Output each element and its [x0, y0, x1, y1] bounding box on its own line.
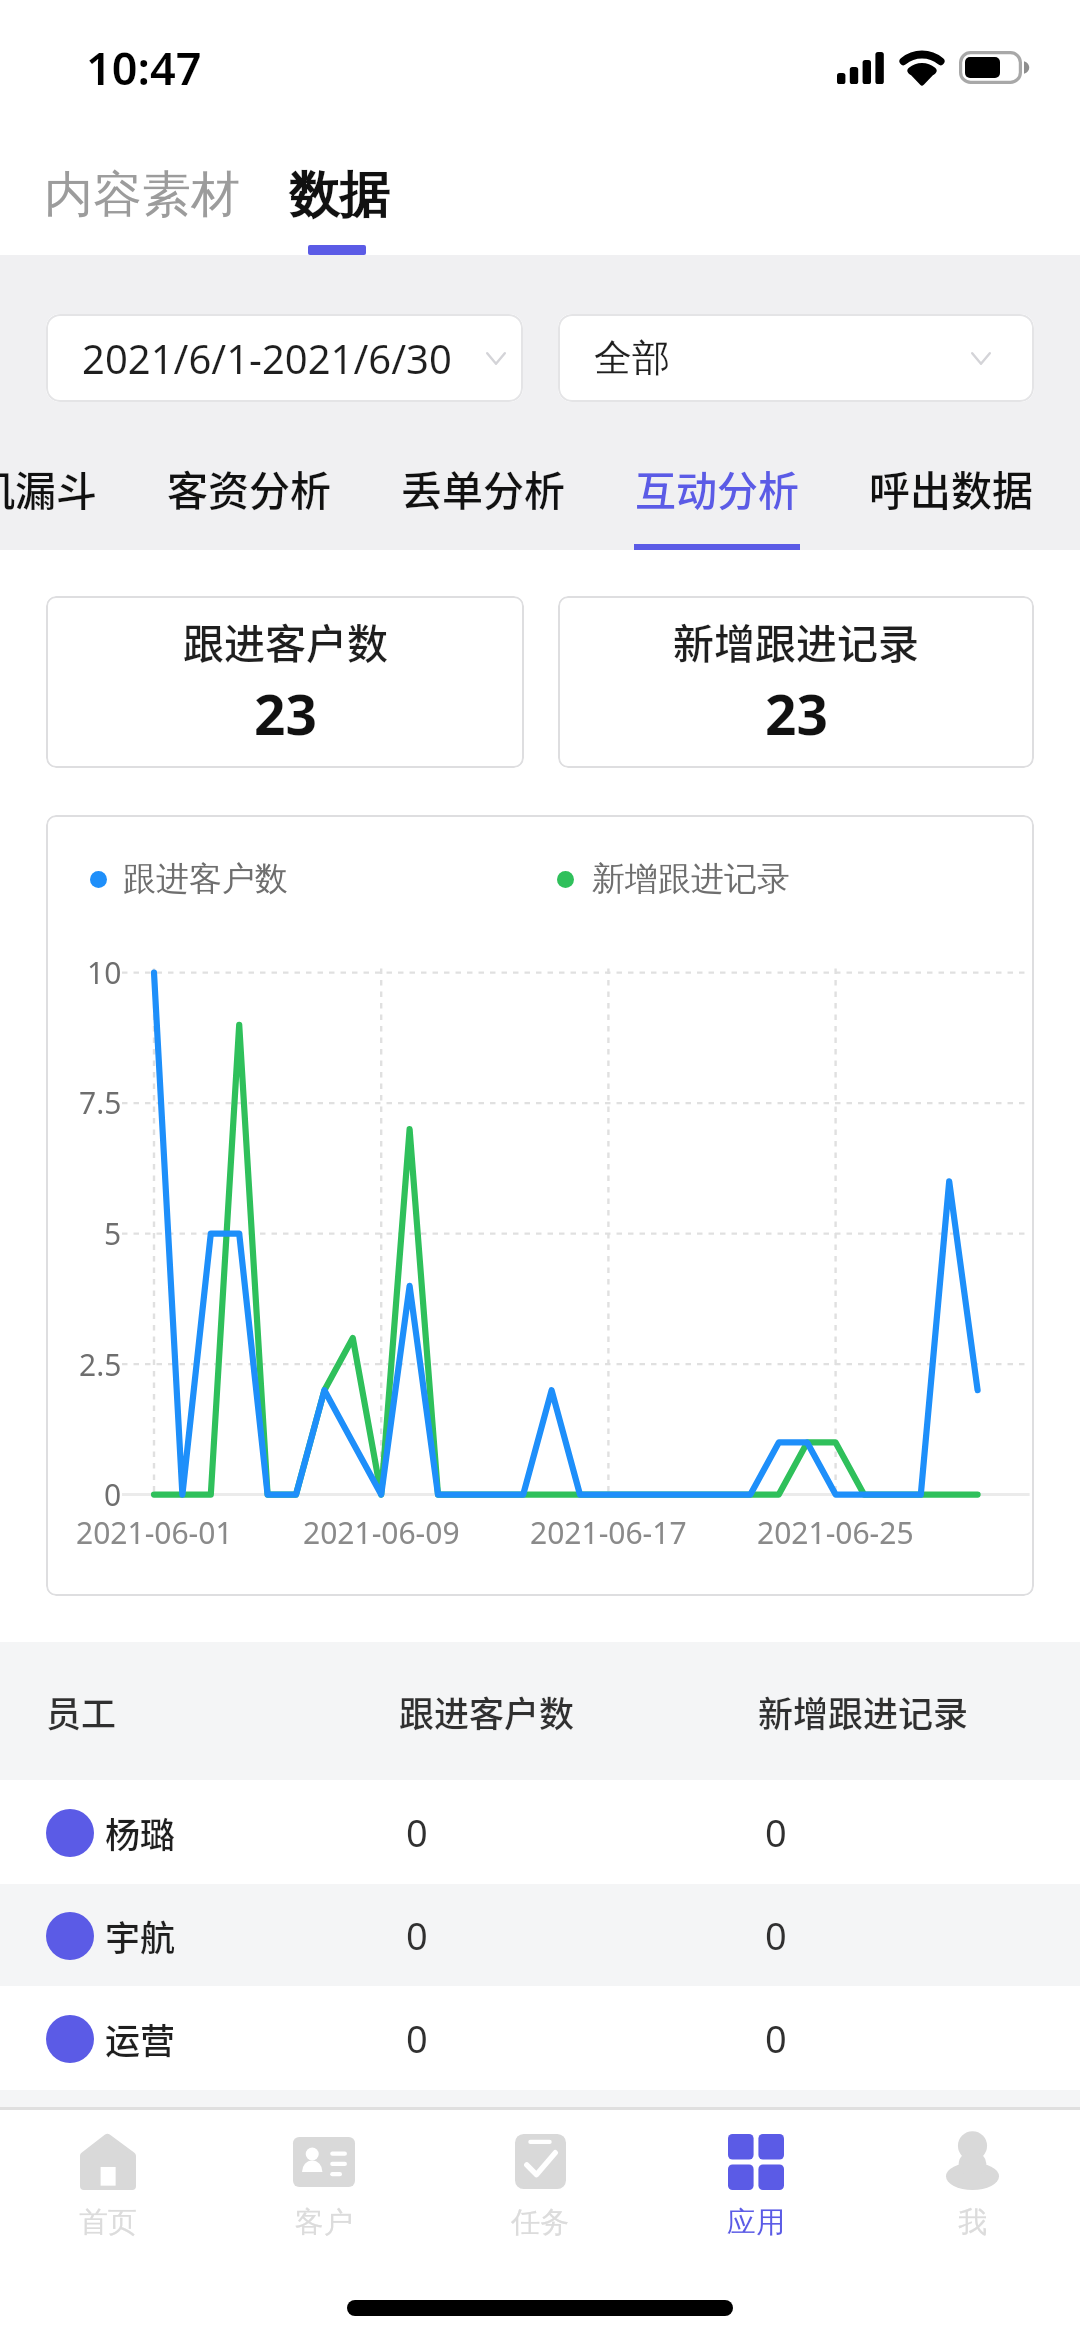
- staticText: 0: [765, 1909, 787, 1961]
- staticText: 2021-06-09: [303, 1512, 460, 1553]
- button[interactable]: 丢单分析: [373, 427, 593, 548]
- staticText: 2.5: [79, 1344, 122, 1385]
- staticText: 全部: [594, 334, 670, 382]
- button[interactable]: Me: [864, 2110, 1080, 2241]
- staticText: 互动分析: [635, 458, 799, 517]
- staticText: 5: [104, 1213, 122, 1254]
- button[interactable]: 商机漏斗: [0, 427, 125, 548]
- staticText: 新增跟进记录: [592, 858, 790, 900]
- button[interactable]: 数据: [289, 164, 389, 227]
- staticText: 杨璐: [105, 1807, 176, 1858]
- button[interactable]: Apps: [648, 2110, 864, 2241]
- staticText: 运营: [105, 2013, 176, 2064]
- staticText: 23: [254, 676, 317, 751]
- button[interactable]: 全部: [558, 314, 1034, 402]
- staticText: 宇航: [105, 1910, 176, 1961]
- staticText: 商机漏斗: [0, 458, 97, 517]
- staticText: 员工: [46, 1686, 399, 1737]
- button[interactable]: 呼出数据: [841, 427, 1061, 548]
- button[interactable]: Home: [0, 2110, 216, 2241]
- staticText: 跟进客户数: [183, 611, 388, 670]
- staticText: 2021-06-17: [530, 1512, 687, 1553]
- staticText: 数据: [289, 164, 389, 227]
- button[interactable]: Customers: [216, 2110, 432, 2241]
- button[interactable]: 跟进客户数: [46, 596, 524, 768]
- staticText: 2021/6/1-2021/6/30: [82, 331, 452, 385]
- staticText: 0: [765, 2012, 787, 2064]
- staticText: 23: [765, 676, 828, 751]
- button[interactable]: 运营: [0, 1986, 1080, 2090]
- staticText: 2021-06-01: [76, 1512, 233, 1553]
- button[interactable]: 杨璐: [0, 1780, 1080, 1884]
- staticText: 客资分析: [167, 458, 331, 517]
- staticText: 7.5: [79, 1082, 122, 1123]
- staticText: 0: [406, 1909, 763, 1961]
- staticText: 0: [104, 1474, 122, 1515]
- staticText: 0: [406, 1806, 763, 1858]
- button[interactable]: 互动分析: [607, 427, 827, 548]
- button[interactable]: 新增跟进记录: [558, 596, 1034, 768]
- staticText: 内容素材: [44, 164, 240, 226]
- staticText: 客户: [295, 2204, 353, 2241]
- staticText: 0: [765, 1806, 787, 1858]
- staticText: 应用: [727, 2204, 785, 2241]
- staticText: 呼出数据: [869, 458, 1033, 517]
- button[interactable]: 宇航: [0, 1884, 1080, 1986]
- staticText: 新增跟进记录: [758, 1686, 969, 1737]
- staticText: 任务: [511, 2204, 569, 2241]
- button[interactable]: Tasks: [432, 2110, 648, 2241]
- staticText: 10:47: [86, 37, 202, 98]
- button[interactable]: 2021/6/1-2021/6/30: [46, 314, 523, 402]
- staticText: 0: [406, 2012, 763, 2064]
- staticText: 首页: [79, 2204, 137, 2241]
- staticText: 新增跟进记录: [673, 611, 919, 670]
- staticText: 跟进客户数: [123, 858, 288, 900]
- staticText: 2021-06-25: [757, 1512, 914, 1553]
- button[interactable]: 内容素材: [44, 164, 240, 226]
- button[interactable]: 客资分析: [139, 427, 359, 548]
- staticText: 跟进客户数: [399, 1686, 758, 1737]
- staticText: 10: [87, 952, 122, 993]
- staticText: 丢单分析: [401, 458, 565, 517]
- staticText: 我: [958, 2204, 987, 2241]
